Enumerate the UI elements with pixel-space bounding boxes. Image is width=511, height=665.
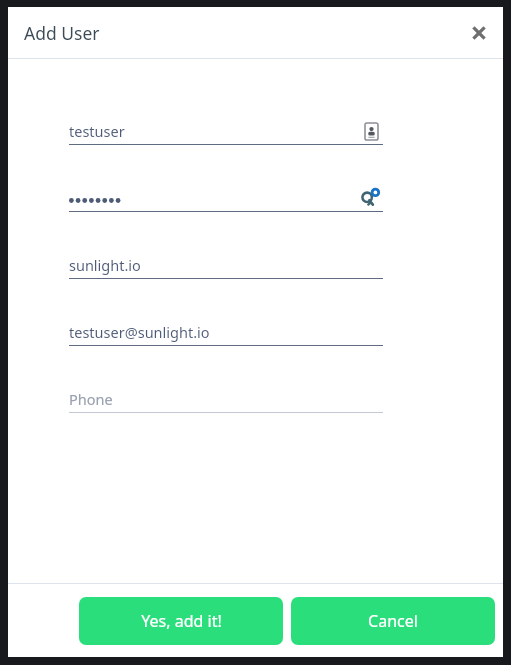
button[interactable]: Cancel [291,597,495,645]
button[interactable]: Autofill password [357,185,383,211]
button[interactable]: Autofill password [69,185,383,212]
button[interactable]: Autofill username [359,119,383,143]
button[interactable]: testuser@sunlight.io [69,319,383,346]
button[interactable]: Yes, add it! [79,597,283,645]
staticText: Yes, add it! [141,610,222,632]
staticText: Phone [69,389,113,409]
staticText: Add User [24,21,100,45]
button[interactable]: Phone [69,386,383,413]
button[interactable]: sunlight.io [69,252,383,279]
staticText: testuser@sunlight.io [69,322,210,342]
button[interactable]: testuser [69,118,383,145]
staticText: testuser [69,121,125,141]
button[interactable]: Close [461,15,497,51]
staticText: sunlight.io [69,255,141,275]
staticText: Cancel [368,610,418,632]
